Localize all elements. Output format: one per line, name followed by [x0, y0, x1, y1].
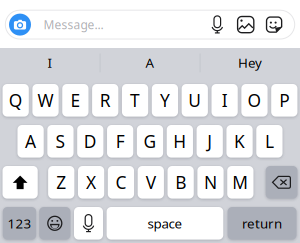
button[interactable]: return: [228, 207, 296, 240]
staticText: Y: [160, 89, 170, 112]
button[interactable]: F: [107, 125, 133, 158]
staticText: Message...: [43, 17, 103, 32]
button[interactable]: Camera: [6, 11, 34, 39]
staticText: R: [100, 89, 111, 112]
button[interactable]: L: [256, 125, 282, 158]
button[interactable]: A: [100, 45, 200, 81]
button[interactable]: N: [197, 166, 224, 199]
staticText: U: [188, 89, 201, 112]
button[interactable]: V: [138, 166, 164, 199]
staticText: Q: [9, 89, 23, 112]
staticText: B: [175, 171, 186, 194]
staticText: return: [242, 214, 282, 232]
staticText: O: [247, 89, 261, 112]
button[interactable]: Stickers: [260, 12, 288, 38]
staticText: D: [84, 130, 97, 153]
staticText: I: [47, 54, 52, 71]
button[interactable]: Shift: [2, 166, 38, 199]
staticText: L: [265, 130, 274, 153]
staticText: C: [115, 171, 126, 194]
button[interactable]: G: [137, 125, 163, 158]
button[interactable]: M: [227, 166, 253, 199]
button[interactable]: Delete: [266, 166, 297, 199]
staticText: S: [55, 130, 65, 153]
staticText: 123: [7, 214, 31, 232]
button[interactable]: Y: [152, 84, 178, 117]
button[interactable]: R: [92, 84, 118, 117]
button[interactable]: I: [0, 45, 100, 81]
button[interactable]: D: [77, 125, 103, 158]
button[interactable]: X: [78, 166, 104, 199]
button[interactable]: H: [167, 125, 193, 158]
staticText: I: [222, 89, 228, 112]
staticText: H: [173, 130, 186, 153]
staticText: M: [232, 171, 248, 194]
button[interactable]: Emoji: [39, 207, 70, 240]
button[interactable]: W: [32, 84, 59, 117]
button[interactable]: Audio message: [203, 12, 231, 38]
staticText: Hey: [238, 54, 262, 71]
staticText: J: [207, 130, 212, 153]
button[interactable]: C: [108, 166, 134, 199]
button[interactable]: S: [47, 125, 73, 158]
button[interactable]: A: [17, 125, 44, 158]
staticText: space: [147, 214, 182, 232]
staticText: V: [146, 171, 156, 194]
button[interactable]: 123: [3, 207, 36, 240]
staticText: K: [234, 130, 245, 153]
button[interactable]: space: [107, 207, 223, 240]
button[interactable]: U: [182, 84, 208, 117]
staticText: Z: [56, 171, 66, 194]
button[interactable]: Z: [48, 166, 74, 199]
staticText: A: [25, 130, 36, 153]
staticText: T: [130, 89, 140, 112]
button[interactable]: O: [241, 84, 267, 117]
staticText: N: [204, 171, 217, 194]
staticText: G: [143, 130, 156, 153]
button[interactable]: T: [122, 84, 148, 117]
staticText: F: [116, 130, 125, 153]
staticText: X: [86, 171, 96, 194]
staticText: W: [37, 89, 53, 112]
button[interactable]: Hey: [200, 45, 300, 81]
button[interactable]: Q: [3, 84, 29, 117]
button[interactable]: B: [167, 166, 194, 199]
button[interactable]: Photos: [231, 12, 260, 38]
staticText: E: [70, 89, 80, 112]
button[interactable]: P: [271, 84, 297, 117]
button[interactable]: Dictation: [74, 207, 103, 240]
staticText: P: [279, 89, 289, 112]
button[interactable]: J: [197, 125, 223, 158]
button[interactable]: K: [226, 125, 253, 158]
button[interactable]: I: [211, 84, 238, 117]
button[interactable]: E: [62, 84, 88, 117]
staticText: A: [145, 54, 154, 71]
